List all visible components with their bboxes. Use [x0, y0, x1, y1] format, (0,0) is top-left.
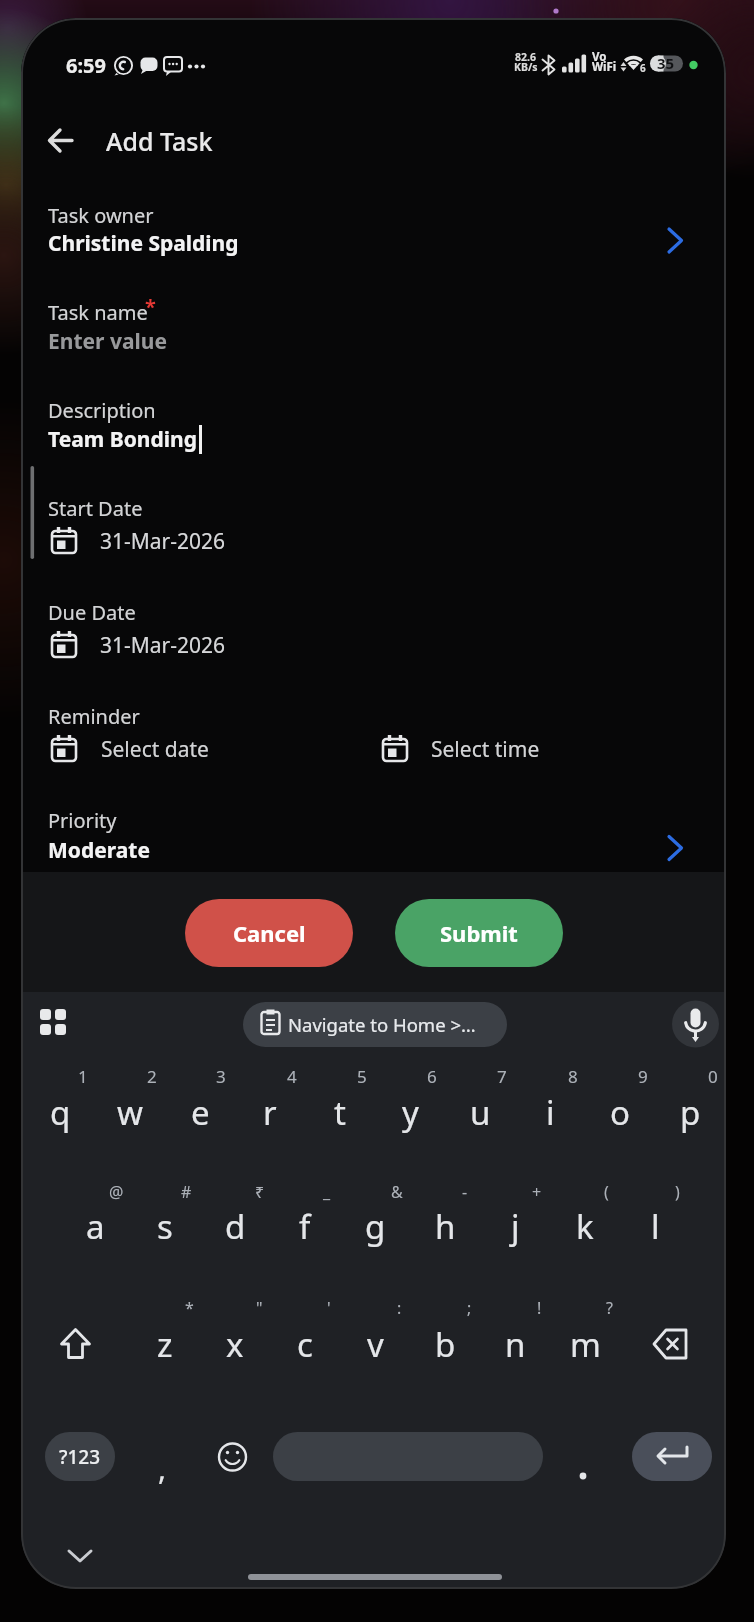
button[interactable]: c: [272, 1311, 338, 1377]
button[interactable]: 7: [482, 1056, 522, 1096]
button[interactable]: Submit: [395, 899, 563, 967]
button[interactable]: ,: [140, 1446, 184, 1490]
button[interactable]: [21, 188, 726, 268]
staticText: 7: [497, 1065, 507, 1088]
button[interactable]: 0: [693, 1056, 726, 1096]
staticText: g: [365, 1204, 386, 1249]
button[interactable]: g: [342, 1193, 408, 1259]
staticText: ?: [606, 1297, 613, 1319]
staticText: Description: [48, 397, 156, 424]
staticText: 6:59: [66, 52, 106, 79]
button[interactable]: 1: [63, 1056, 103, 1096]
staticText: 2: [147, 1065, 157, 1088]
button[interactable]: [641, 1318, 701, 1370]
button[interactable]: p: [657, 1079, 723, 1145]
staticText: c: [297, 1322, 313, 1367]
button[interactable]: y: [377, 1079, 443, 1145]
staticText: Vo: [592, 49, 607, 65]
button[interactable]: o: [587, 1079, 653, 1145]
staticText: !: [537, 1297, 542, 1319]
button[interactable]: w: [97, 1079, 163, 1145]
staticText: Priority: [48, 807, 117, 834]
button[interactable]: 9: [623, 1056, 663, 1096]
button[interactable]: b: [412, 1311, 478, 1377]
button[interactable]: ?123: [45, 1432, 115, 1481]
staticText: f: [299, 1204, 311, 1249]
staticText: -: [462, 1181, 468, 1203]
staticText: l: [651, 1204, 660, 1249]
staticText: q: [50, 1090, 71, 1135]
button[interactable]: 5: [342, 1056, 382, 1096]
button[interactable]: m: [552, 1311, 618, 1377]
staticText: u: [470, 1090, 491, 1135]
button[interactable]: j: [482, 1193, 548, 1259]
button[interactable]: z: [132, 1311, 198, 1377]
button[interactable]: [21, 690, 726, 770]
staticText: w: [117, 1090, 143, 1135]
button[interactable]: [273, 1432, 543, 1481]
button[interactable]: 8: [553, 1056, 593, 1096]
staticText: 6: [427, 1065, 437, 1088]
button[interactable]: [61, 1538, 101, 1578]
button[interactable]: i: [517, 1079, 583, 1145]
staticText: k: [576, 1204, 594, 1249]
staticText: KB/s: [514, 60, 538, 74]
button[interactable]: [672, 1000, 720, 1048]
button[interactable]: [21, 384, 726, 464]
button[interactable]: [21, 794, 726, 874]
staticText: 35: [657, 53, 675, 73]
button[interactable]: a: [62, 1193, 128, 1259]
button[interactable]: [46, 1318, 106, 1370]
button[interactable]: [21, 286, 726, 366]
button[interactable]: s: [132, 1193, 198, 1259]
button[interactable]: [31, 1002, 77, 1048]
staticText: 4: [287, 1065, 297, 1088]
button[interactable]: k: [552, 1193, 618, 1259]
button[interactable]: e: [167, 1079, 233, 1145]
staticText: 8: [568, 1065, 578, 1088]
staticText: ?123: [59, 1444, 101, 1470]
button[interactable]: [21, 586, 726, 666]
staticText: x: [226, 1322, 244, 1367]
staticText: z: [157, 1322, 173, 1367]
staticText: Submit: [440, 918, 518, 948]
button[interactable]: f: [272, 1193, 338, 1259]
button[interactable]: [21, 482, 726, 562]
button[interactable]: 2: [132, 1056, 172, 1096]
button[interactable]: r: [237, 1079, 303, 1145]
staticText: 0: [708, 1065, 718, 1088]
button[interactable]: l: [622, 1193, 688, 1259]
button[interactable]: 4: [272, 1056, 312, 1096]
button[interactable]: [632, 1432, 712, 1481]
button[interactable]: v: [342, 1311, 408, 1377]
staticText: y: [402, 1090, 419, 1135]
button[interactable]: d: [202, 1193, 268, 1259]
staticText: ,: [158, 1448, 167, 1489]
staticText: WiFi: [592, 59, 617, 75]
staticText: 31-Mar-2026: [100, 631, 226, 660]
button[interactable]: u: [447, 1079, 513, 1145]
staticText: h: [435, 1204, 456, 1249]
staticText: 5: [357, 1065, 367, 1088]
staticText: Navigate to Home >…: [288, 1012, 476, 1037]
button[interactable]: n: [482, 1311, 548, 1377]
staticText: (: [604, 1181, 609, 1203]
button[interactable]: [243, 1002, 507, 1047]
button[interactable]: Cancel: [185, 899, 353, 967]
staticText: a: [86, 1204, 105, 1249]
button[interactable]: h: [412, 1193, 478, 1259]
staticText: Select date: [101, 735, 209, 764]
button[interactable]: 3: [201, 1056, 241, 1096]
button[interactable]: x: [202, 1311, 268, 1377]
button[interactable]: [561, 1448, 605, 1492]
staticText: Enter value: [48, 327, 167, 356]
button[interactable]: t: [307, 1079, 373, 1145]
button[interactable]: [36, 123, 96, 183]
button[interactable]: 6: [412, 1056, 452, 1096]
staticText: Due Date: [48, 599, 136, 626]
staticText: 82.6: [515, 50, 536, 64]
staticText: s: [157, 1204, 173, 1249]
button[interactable]: [211, 1438, 255, 1482]
button[interactable]: q: [27, 1079, 93, 1145]
staticText: *: [185, 1297, 194, 1319]
